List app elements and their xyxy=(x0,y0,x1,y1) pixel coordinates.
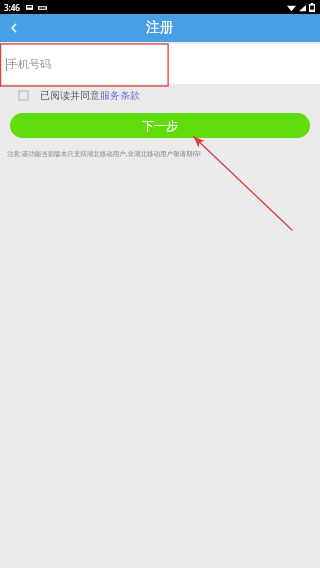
staticText: 已阅读并同意服务条款 xyxy=(40,89,140,102)
staticText: 注册 xyxy=(146,19,174,37)
button[interactable]: Back xyxy=(0,14,28,42)
staticText: 3:46 xyxy=(4,2,20,13)
staticText: 注意:该功能当前版本只支持湖北移动用户,非湖北移动用户敬请期待! xyxy=(7,149,201,158)
button[interactable]: 已阅读并同意服务条款 xyxy=(0,86,320,104)
button[interactable]: 下一步 xyxy=(10,113,310,138)
button[interactable]: 手机号码 xyxy=(0,44,320,84)
staticText: 手机号码 xyxy=(7,57,51,71)
staticText: 下一步 xyxy=(142,118,178,133)
